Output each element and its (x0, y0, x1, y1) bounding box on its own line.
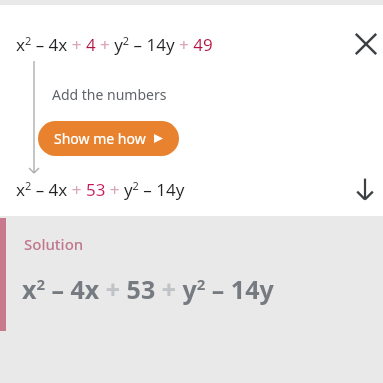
button[interactable]: Close (349, 27, 383, 61)
staticText: x2 – 4x + 53 + y2 – 14y (22, 272, 274, 306)
button[interactable]: Show me how (38, 121, 179, 156)
staticText: Solution (24, 234, 84, 254)
staticText: x2 – 4x + 53 + y2 – 14y (16, 178, 185, 201)
staticText: x2 – 4x + 4 + y2 – 14y + 49 (16, 33, 213, 56)
staticText: Show me how (54, 129, 146, 148)
staticText: Add the numbers (52, 85, 167, 104)
button[interactable]: Expand (352, 176, 378, 202)
